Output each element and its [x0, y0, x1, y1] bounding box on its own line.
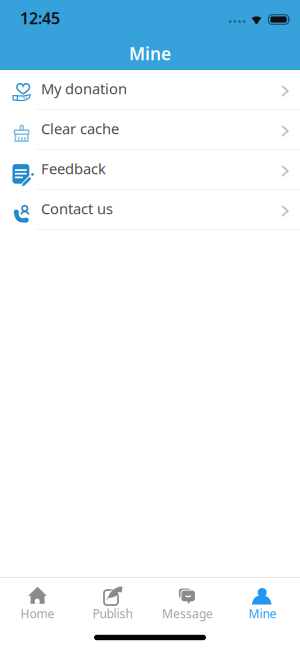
- staticText: Clear cache: [41, 119, 119, 138]
- staticText: My donation: [41, 79, 127, 98]
- button[interactable]: Mine: [225, 578, 300, 620]
- staticText: 12:45: [20, 7, 60, 29]
- staticText: Publish: [92, 605, 132, 621]
- button[interactable]: Message: [150, 578, 225, 620]
- button[interactable]: My donation: [0, 70, 300, 110]
- staticText: Message: [162, 605, 213, 621]
- staticText: Mine: [248, 605, 276, 621]
- button[interactable]: Publish: [75, 578, 150, 620]
- button[interactable]: Clear cache: [0, 110, 300, 150]
- staticText: Mine: [129, 42, 171, 65]
- button[interactable]: Contact us: [0, 190, 300, 230]
- staticText: Home: [20, 605, 54, 621]
- staticText: Contact us: [41, 199, 113, 218]
- button[interactable]: Feedback: [0, 150, 300, 190]
- button[interactable]: Home: [0, 578, 75, 620]
- staticText: Feedback: [41, 159, 106, 178]
